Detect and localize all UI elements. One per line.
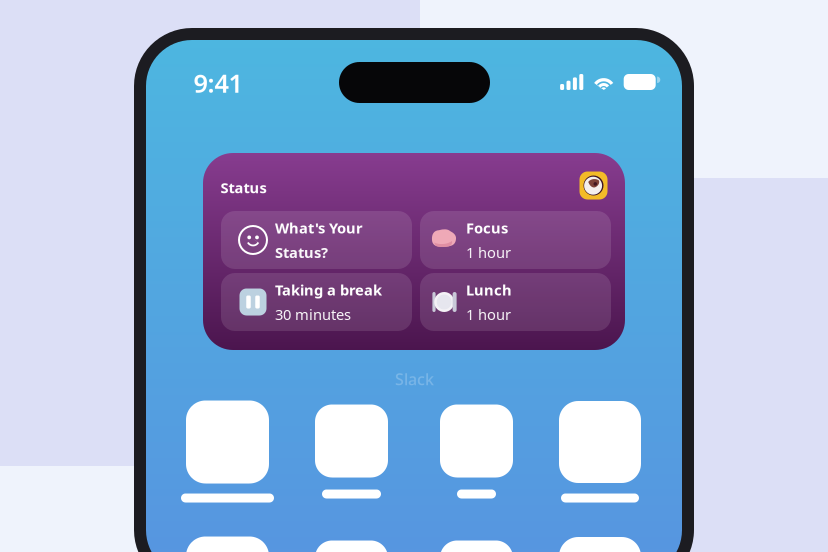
staticText: 1 hour bbox=[466, 242, 511, 262]
button[interactable]: Lunch bbox=[420, 273, 611, 331]
button[interactable]: App bbox=[440, 540, 513, 552]
button[interactable]: App bbox=[315, 404, 388, 477]
button[interactable]: Slack bbox=[579, 171, 607, 199]
button[interactable]: App bbox=[315, 540, 388, 552]
staticText: Status? bbox=[275, 242, 328, 262]
button[interactable]: App bbox=[440, 404, 513, 477]
button[interactable]: What's Your bbox=[221, 211, 412, 269]
staticText: 30 minutes bbox=[275, 304, 351, 324]
staticText: Lunch bbox=[466, 280, 512, 299]
staticText: 1 hour bbox=[466, 304, 511, 324]
button[interactable]: App bbox=[559, 401, 641, 483]
staticText: 9:41 bbox=[193, 66, 242, 100]
button[interactable]: App bbox=[186, 536, 269, 552]
button[interactable]: Focus bbox=[420, 211, 611, 269]
button[interactable]: App bbox=[186, 400, 269, 483]
button[interactable]: App bbox=[559, 537, 641, 552]
staticText: What's Your bbox=[275, 218, 363, 237]
staticText: Taking a break bbox=[275, 280, 382, 299]
staticText: Focus bbox=[466, 218, 508, 237]
staticText: Status bbox=[220, 178, 266, 197]
button[interactable]: Taking a break bbox=[221, 273, 412, 331]
staticText: Slack bbox=[395, 368, 434, 390]
